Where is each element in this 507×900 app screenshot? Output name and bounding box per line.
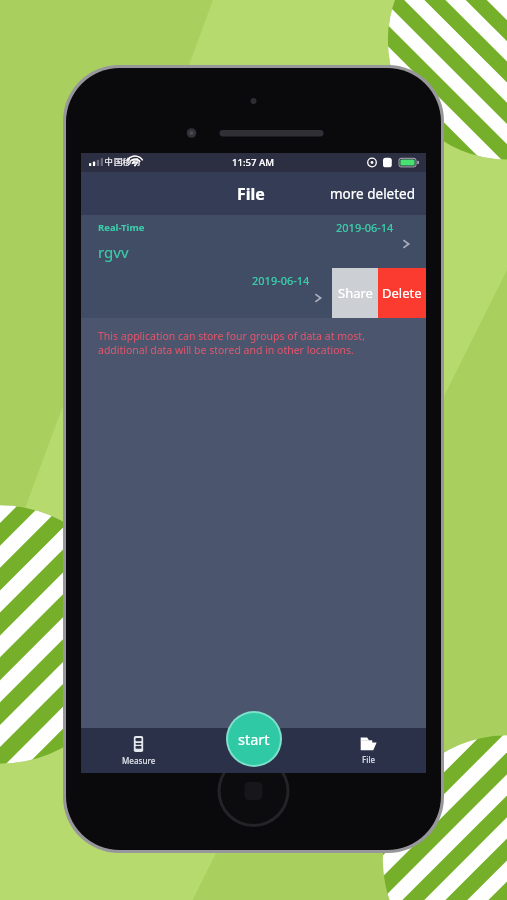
staticText: Real-Time (98, 221, 145, 234)
button[interactable]: 2019-06-14 (81, 268, 332, 318)
staticText: Share (338, 284, 373, 302)
button[interactable]: start (228, 713, 280, 765)
button[interactable]: File (311, 728, 426, 773)
staticText: rgvv (98, 242, 129, 262)
staticText: This application can store four groups o… (98, 329, 365, 343)
button[interactable]: Delete (378, 268, 426, 318)
staticText: start (238, 729, 270, 749)
other: File (360, 736, 377, 751)
button[interactable]: more deleted (320, 179, 426, 209)
staticText: Measure (122, 755, 156, 766)
button[interactable]: File (237, 183, 265, 205)
staticText: 11:57 AM (232, 156, 275, 169)
staticText: Delete (382, 284, 422, 302)
other: Measure (132, 736, 145, 752)
staticText: 中国移动 (105, 157, 141, 168)
button[interactable]: Measure (81, 728, 196, 773)
button[interactable]: Real-Time (81, 215, 426, 268)
staticText: more deleted (330, 185, 416, 203)
button[interactable]: Share (332, 268, 378, 318)
staticText: File (362, 754, 376, 765)
staticText: 2019-06-14 (252, 273, 310, 288)
staticText: additional data will be stored and in ot… (98, 343, 354, 357)
staticText: 2019-06-14 (336, 220, 394, 235)
